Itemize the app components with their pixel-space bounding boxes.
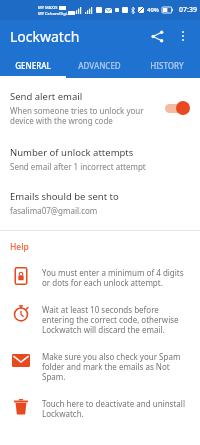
button[interactable]: More options	[170, 23, 196, 49]
button[interactable]: Touch here to deactivate and uninstall L…	[0, 394, 200, 421]
staticText: Send email after 1 incorrect attempt	[10, 161, 146, 172]
staticText: Number of unlock attempts	[10, 146, 134, 159]
staticText: Emails should be sent to	[10, 190, 119, 203]
button[interactable]: HISTORY	[133, 52, 200, 78]
staticText: MY MAXIS	[38, 5, 58, 10]
staticText: GENERAL	[15, 60, 51, 71]
staticText: ADVANCED	[78, 60, 121, 71]
staticText: Make sure you also check your Spam folde…	[42, 351, 190, 382]
staticText: 49%	[147, 6, 159, 14]
staticText: You must enter a minimum of 4 digits or …	[42, 267, 190, 288]
staticText: fasalima07@gmail.com	[10, 205, 98, 216]
button[interactable]: Send alert email	[0, 86, 200, 130]
button[interactable]: Share	[144, 23, 170, 49]
button[interactable]: ADVANCED	[66, 52, 133, 78]
button[interactable]: GENERAL	[0, 52, 66, 78]
staticText: 07:39	[179, 5, 197, 15]
staticText: Touch here to deactivate and uninstall L…	[42, 398, 190, 419]
staticText: Send alert email	[10, 90, 83, 103]
button[interactable]: Make sure you also check your Spam folde…	[0, 347, 200, 384]
button[interactable]: Emails should be sent to	[0, 188, 200, 218]
staticText: Help	[10, 241, 29, 253]
staticText: Wait at least 10 seconds before entering…	[42, 304, 190, 335]
button[interactable]: Number of unlock attempts	[0, 144, 200, 174]
staticText: HISTORY	[150, 60, 184, 71]
button[interactable]: Send alert email toggle	[162, 100, 192, 116]
staticText: When someone tries to unlock your device…	[10, 105, 156, 126]
staticText: MY CelcomDigi…	[38, 11, 70, 16]
button[interactable]: You must enter a minimum of 4 digits or …	[0, 263, 200, 290]
staticText: Lockwatch	[10, 27, 80, 46]
button[interactable]: Wait at least 10 seconds before entering…	[0, 300, 200, 337]
